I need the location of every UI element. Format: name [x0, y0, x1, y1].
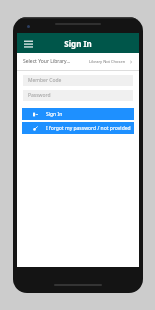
button[interactable]: Password: [23, 90, 133, 101]
staticText: Member Code: [28, 77, 62, 84]
button[interactable]: Sign In: [22, 108, 134, 120]
button[interactable]: Member Code: [23, 75, 133, 86]
staticText: I forgot my password / not provided: [46, 125, 131, 132]
staticText: Sign In: [46, 111, 63, 118]
staticText: Password: [28, 92, 51, 99]
button[interactable]: Open navigation menu: [17, 33, 39, 53]
staticText: Library Not Chosen: [89, 59, 126, 64]
staticText: Sign In: [64, 38, 92, 49]
staticText: Select Your Library...: [23, 58, 71, 65]
button[interactable]: Select Your Library...: [17, 53, 139, 70]
button[interactable]: I forgot my password / not provided: [22, 122, 134, 134]
